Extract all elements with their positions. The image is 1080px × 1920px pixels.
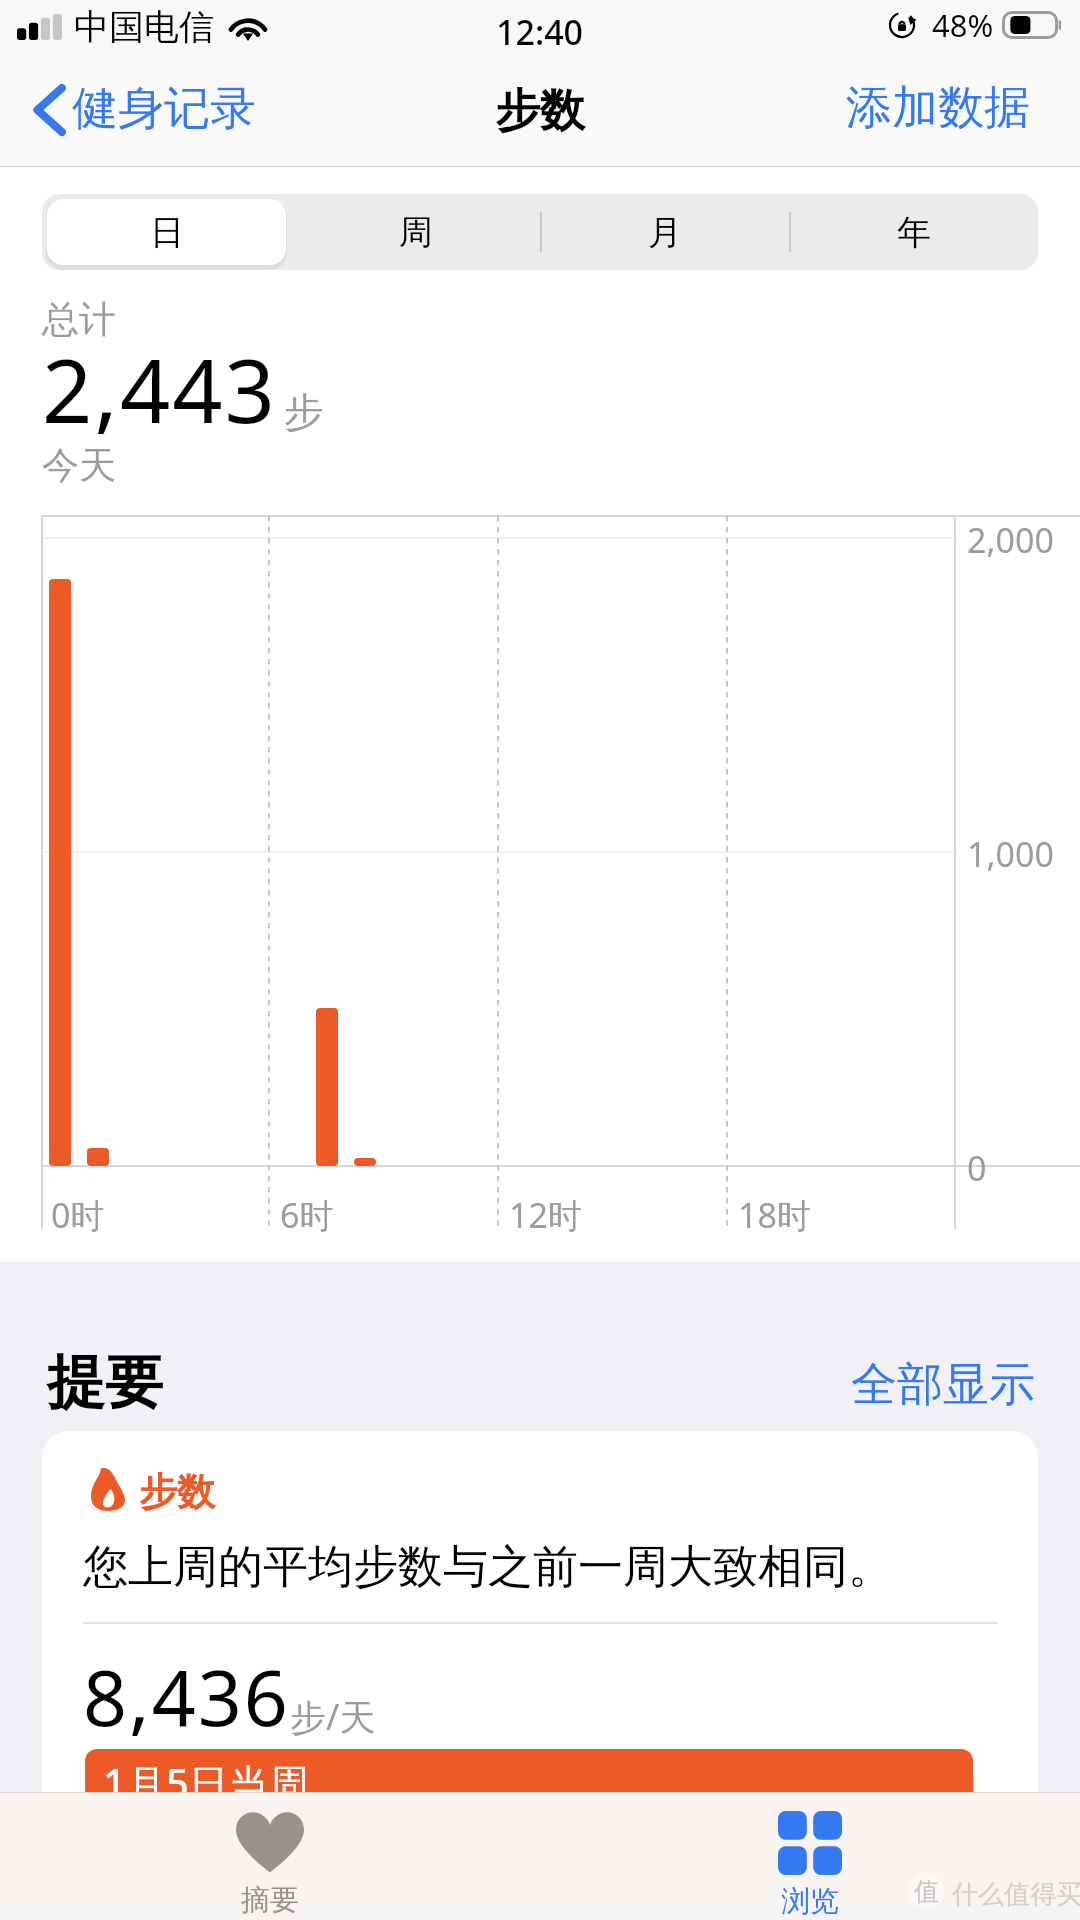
staticText: 您上周的平均步数与之前一周大致相同。	[83, 1539, 893, 1596]
button[interactable]: 提要	[47, 1346, 163, 1419]
staticText: 值	[914, 1876, 939, 1907]
staticText: 浏览	[781, 1883, 839, 1920]
staticText: 提要	[47, 1346, 163, 1419]
staticText: 月	[648, 211, 682, 254]
staticText: 18时	[738, 1192, 811, 1238]
button[interactable]: 周	[291, 194, 540, 270]
staticText: 1月5日当周	[103, 1755, 309, 1810]
staticText: 今天	[42, 442, 116, 489]
staticText: 12时	[509, 1192, 582, 1238]
button[interactable]: 浏览	[540, 1792, 1080, 1920]
staticText: 0时	[51, 1192, 105, 1238]
staticText: 中国电信	[74, 5, 214, 49]
staticText: 6时	[280, 1192, 334, 1238]
staticText: 1,000	[967, 831, 1054, 877]
staticText: 步数	[495, 83, 585, 140]
staticText: 12:40	[496, 9, 584, 55]
button[interactable]: 健身记录	[0, 89, 266, 147]
button[interactable]: 全部显示	[851, 1356, 1035, 1414]
staticText: 日	[150, 211, 184, 254]
button[interactable]: 年	[789, 194, 1038, 270]
staticText: 步	[284, 387, 324, 437]
button[interactable]: 月	[540, 194, 789, 270]
staticText: 全部显示	[851, 1356, 1035, 1414]
staticText: 2,000	[967, 517, 1054, 563]
staticText: 总计	[42, 296, 116, 343]
button[interactable]: 步数	[42, 1431, 1038, 1831]
staticText: 摘要	[241, 1882, 299, 1919]
button[interactable]: 日	[42, 194, 291, 270]
staticText: 48%	[932, 4, 994, 46]
button[interactable]: 添加数据	[840, 89, 1080, 147]
button[interactable]: 摘要	[0, 1792, 540, 1920]
staticText: 年	[897, 211, 931, 254]
staticText: 添加数据	[846, 79, 1030, 137]
staticText: 步数	[139, 1468, 215, 1516]
staticText: 步/天	[290, 1692, 376, 1741]
staticText: 健身记录	[72, 80, 256, 138]
staticText: 周	[399, 211, 433, 254]
staticText: 0	[967, 1145, 987, 1191]
staticText: 2,443	[42, 329, 277, 449]
staticText: 8,436	[83, 1644, 290, 1749]
staticText: 什么值得买	[952, 1878, 1080, 1911]
